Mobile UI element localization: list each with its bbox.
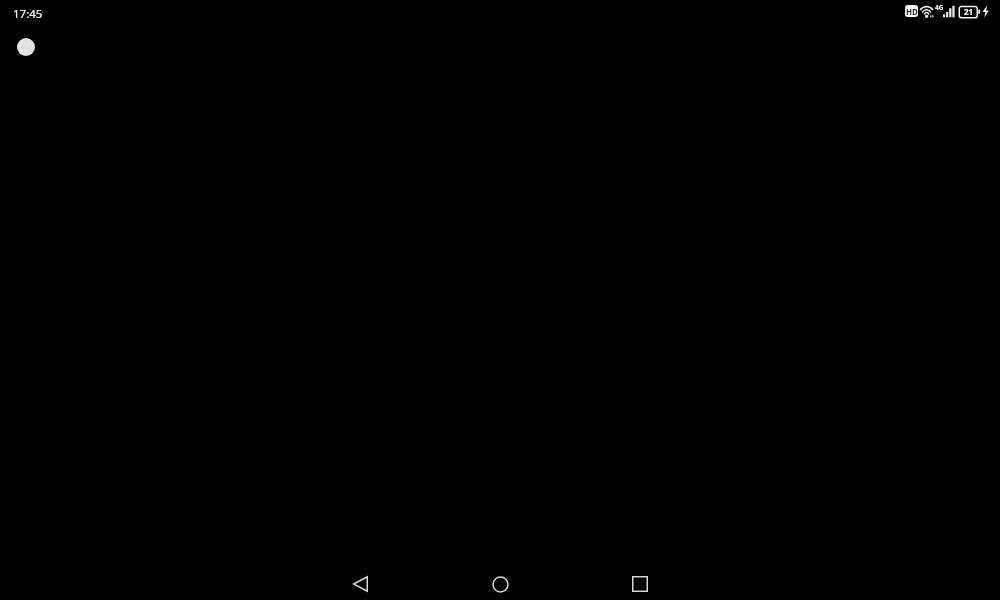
button[interactable]: Recent apps: [620, 564, 660, 600]
button[interactable]: Home: [480, 564, 520, 600]
staticText: 4G: [935, 3, 944, 12]
staticText: 17:45: [13, 6, 43, 22]
staticText: 21: [964, 6, 974, 17]
button[interactable]: Back: [340, 564, 380, 600]
button[interactable]: Shutter: [17, 38, 35, 56]
staticText: HD: [906, 6, 918, 17]
